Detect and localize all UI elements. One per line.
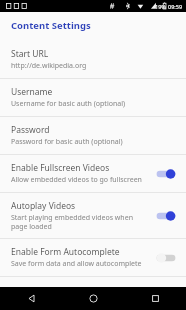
button[interactable]: Autoplay Videos: [0, 193, 186, 238]
staticText: Password: [11, 124, 50, 136]
button[interactable]: Enable Fullscreen Videos: [0, 155, 186, 192]
staticText: Enable Form Autocomplete: [11, 246, 120, 258]
staticText: Username: [11, 86, 53, 98]
staticText: Content Settings: [11, 19, 91, 32]
button[interactable]: Toggle on: [153, 207, 179, 225]
button[interactable]: Recent apps: [124, 287, 186, 310]
staticText: 09:59: [168, 3, 183, 10]
button[interactable]: Username: [0, 79, 186, 116]
staticText: Enable Fullscreen Videos: [11, 162, 110, 174]
button[interactable]: Toggle on: [153, 165, 179, 183]
staticText: Username for basic auth (optional): [11, 99, 126, 109]
staticText: Password for basic auth (optional): [11, 137, 123, 147]
staticText: Save form data and allow autocomplete: [11, 259, 142, 269]
button[interactable]: Password: [0, 117, 186, 154]
staticText: http://de.wikipedia.org: [11, 61, 87, 71]
button[interactable]: Back: [0, 287, 62, 310]
staticText: Start playing embedded videos when page …: [11, 213, 147, 231]
staticText: Allow embedded videos to go fullscreen: [11, 175, 142, 185]
staticText: Autoplay Videos: [11, 200, 76, 212]
button[interactable]: Start URL: [0, 41, 186, 78]
button[interactable]: Toggle off: [153, 249, 179, 267]
staticText: 19%: [155, 3, 166, 10]
staticText: Start URL: [11, 48, 49, 60]
button[interactable]: Home: [62, 287, 124, 310]
button[interactable]: Enable Form Autocomplete: [0, 239, 186, 276]
